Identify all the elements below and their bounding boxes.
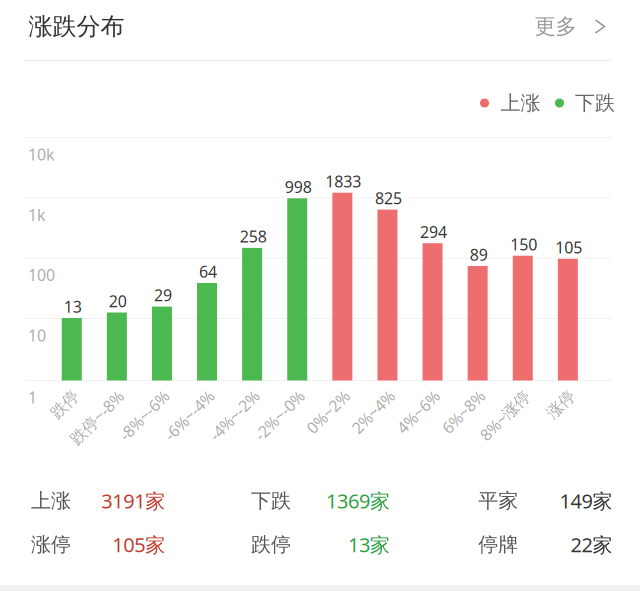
staticText: 13 xyxy=(64,296,82,317)
staticText: -2%~-0% xyxy=(248,405,311,426)
staticText: 6%~8% xyxy=(437,401,490,422)
staticText: 更多 xyxy=(534,13,576,40)
staticText: 涨停 xyxy=(31,532,71,557)
staticText: 100 xyxy=(28,264,55,285)
staticText: 2%~4% xyxy=(347,401,400,422)
staticText: 258 xyxy=(240,226,267,247)
staticText: 1369家 xyxy=(326,487,390,514)
staticText: -6%~-4% xyxy=(158,405,221,426)
staticText: 998 xyxy=(285,176,312,197)
staticText: 跌停~-8% xyxy=(63,407,131,428)
staticText: 8%~涨停 xyxy=(473,405,536,426)
staticText: 64 xyxy=(199,261,217,282)
staticText: 29 xyxy=(154,284,172,306)
staticText: 涨跌分布 xyxy=(28,12,124,41)
staticText: 10 xyxy=(28,325,46,346)
staticText: 20 xyxy=(109,290,127,312)
staticText: 下跌 xyxy=(575,91,615,115)
staticText: 4%~6% xyxy=(392,401,445,422)
staticText: 涨停 xyxy=(545,395,577,414)
staticText: -4%~-2% xyxy=(203,405,266,426)
staticText: 停牌 xyxy=(478,532,518,557)
staticText: 跌停 xyxy=(251,532,291,557)
staticText: 150 xyxy=(510,234,537,255)
staticText: 1k xyxy=(28,204,46,225)
staticText: 0%~2% xyxy=(301,401,354,422)
staticText: 下跌 xyxy=(251,488,291,513)
button[interactable]: 更多 xyxy=(528,4,611,49)
staticText: 22家 xyxy=(571,531,613,558)
staticText: 825 xyxy=(375,187,402,209)
staticText: 294 xyxy=(420,221,447,242)
staticText: 上涨 xyxy=(500,91,540,115)
staticText: 跌停 xyxy=(49,395,81,414)
staticText: 89 xyxy=(470,244,488,265)
staticText: 105家 xyxy=(112,531,165,558)
staticText: 105 xyxy=(555,237,582,258)
staticText: 13家 xyxy=(348,531,390,558)
staticText: 平家 xyxy=(478,488,518,513)
staticText: 3191家 xyxy=(101,487,165,514)
staticText: -8%~-6% xyxy=(112,405,175,426)
staticText: 上涨 xyxy=(31,488,71,513)
staticText: 10k xyxy=(28,144,55,165)
staticText: 1 xyxy=(28,387,37,408)
staticText: 149家 xyxy=(560,487,613,514)
staticText: 1833 xyxy=(325,171,361,192)
